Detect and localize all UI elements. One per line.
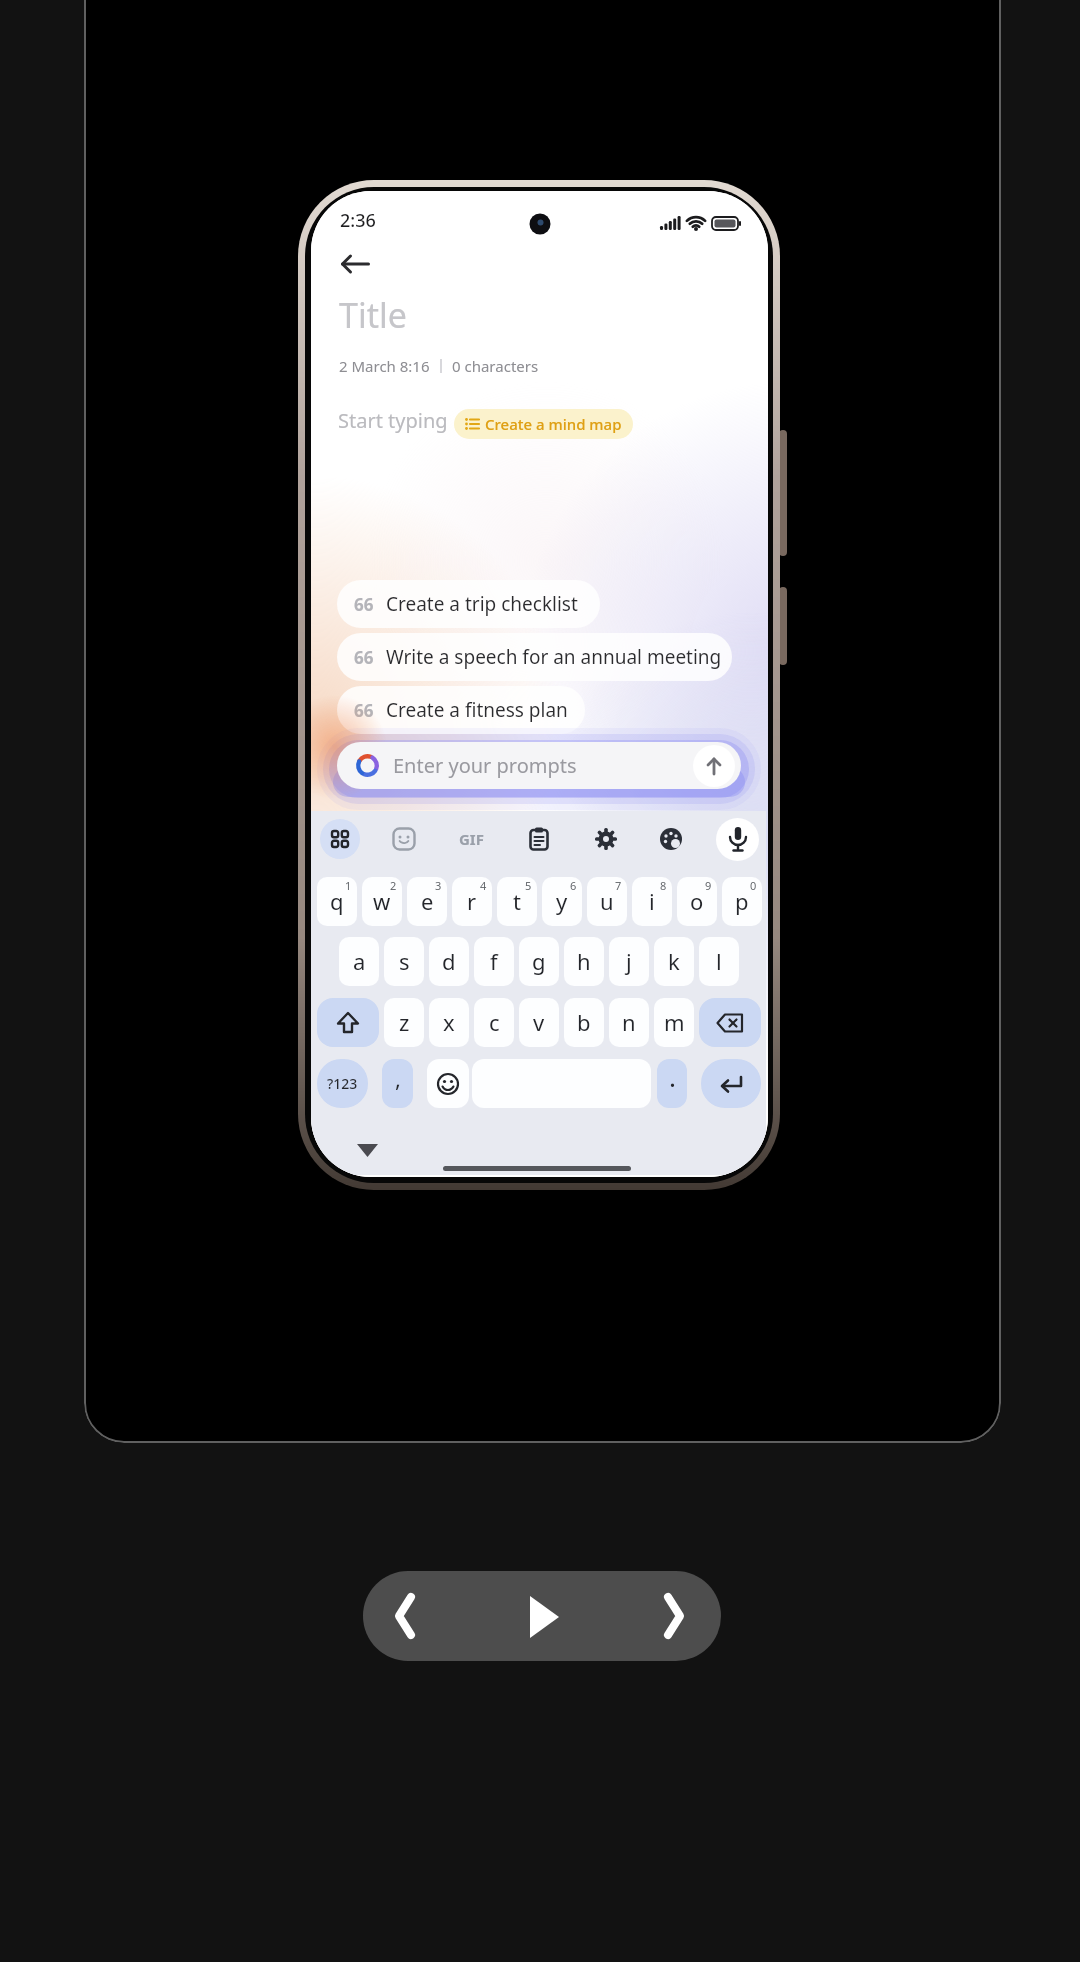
button[interactable]: 66 (337, 580, 600, 628)
button[interactable]: ?123 (317, 1059, 368, 1108)
button[interactable]: m (654, 998, 694, 1047)
button[interactable]: b (564, 998, 604, 1047)
staticText: 3 (435, 878, 442, 893)
button[interactable]: f (474, 937, 514, 986)
button[interactable]: i (632, 877, 672, 926)
staticText: 7 (615, 878, 622, 893)
button[interactable]: x (429, 998, 469, 1047)
button[interactable]: q (317, 877, 357, 926)
button[interactable]: n (609, 998, 649, 1047)
staticText: 1 (345, 878, 352, 893)
button[interactable]: h (564, 937, 604, 986)
staticText: 6 (570, 878, 577, 893)
staticText: p (735, 886, 749, 916)
button[interactable]: . (657, 1059, 687, 1108)
staticText: r (467, 886, 477, 916)
staticText: ?123 (327, 1074, 358, 1093)
button[interactable] (342, 255, 370, 273)
button[interactable] (654, 822, 688, 856)
button[interactable] (701, 1059, 761, 1108)
button[interactable] (716, 818, 759, 861)
button[interactable] (602, 1571, 721, 1661)
staticText: x (443, 1007, 455, 1037)
staticText: d (442, 946, 456, 976)
button[interactable]: 66 (337, 686, 585, 734)
staticText: 2:36 (340, 208, 376, 233)
button[interactable]: c (474, 998, 514, 1047)
staticText: v (533, 1007, 545, 1037)
button[interactable] (320, 819, 360, 859)
staticText: u (600, 886, 614, 916)
button[interactable] (693, 745, 735, 787)
button[interactable]: 66 (337, 633, 732, 681)
staticText: Create a fitness plan (386, 697, 568, 723)
staticText: b (577, 1007, 591, 1037)
button[interactable]: e (407, 877, 447, 926)
staticText: c (489, 1007, 500, 1037)
staticText: g (532, 946, 546, 976)
staticText: e (421, 886, 434, 916)
button[interactable]: t (497, 877, 537, 926)
staticText: Enter your prompts (393, 752, 577, 779)
button[interactable]: p (722, 877, 762, 926)
button[interactable]: j (609, 937, 649, 986)
button[interactable]: u (587, 877, 627, 926)
button[interactable]: Create a mind map (454, 409, 633, 439)
button[interactable]: GIF (449, 822, 493, 856)
button[interactable]: y (542, 877, 582, 926)
button[interactable] (427, 1059, 469, 1108)
button[interactable] (387, 822, 421, 856)
staticText: Start typing (338, 407, 448, 434)
button[interactable]: w (362, 877, 402, 926)
staticText: 5 (525, 878, 532, 893)
staticText: a (353, 946, 366, 976)
staticText: y (556, 886, 568, 916)
staticText: Create a mind map (485, 414, 622, 434)
button[interactable]: Enter your prompts (337, 742, 741, 789)
staticText: h (577, 946, 591, 976)
button[interactable] (483, 1571, 602, 1661)
button[interactable]: z (384, 998, 424, 1047)
button[interactable] (363, 1571, 483, 1661)
staticText: , (395, 1063, 401, 1093)
staticText: f (490, 946, 498, 976)
staticText: n (622, 1007, 636, 1037)
staticText: o (690, 886, 704, 916)
staticText: t (513, 886, 521, 916)
button[interactable]: a (339, 937, 379, 986)
staticText: q (330, 886, 344, 916)
button[interactable]: k (654, 937, 694, 986)
button[interactable]: , (382, 1059, 413, 1108)
button[interactable] (357, 1144, 379, 1158)
staticText: s (399, 946, 410, 976)
staticText: k (668, 946, 680, 976)
staticText: Title (339, 292, 407, 338)
staticText: z (399, 1007, 410, 1037)
button[interactable]: g (519, 937, 559, 986)
staticText: l (716, 946, 722, 976)
staticText: 9 (705, 878, 712, 893)
button[interactable]: r (452, 877, 492, 926)
staticText: . (669, 1059, 676, 1094)
button[interactable] (317, 998, 379, 1047)
button[interactable]: s (384, 937, 424, 986)
button[interactable]: d (429, 937, 469, 986)
button[interactable] (699, 998, 761, 1047)
button[interactable]: l (699, 937, 739, 986)
button[interactable] (589, 822, 623, 856)
staticText: 4 (480, 878, 487, 893)
staticText: 0 (750, 878, 757, 893)
staticText: 66 (354, 593, 374, 616)
button[interactable]: v (519, 998, 559, 1047)
staticText: i (649, 886, 655, 916)
button[interactable] (522, 822, 556, 856)
staticText: Write a speech for an annual meeting (386, 644, 722, 670)
staticText: 2 (390, 878, 397, 893)
staticText: j (626, 946, 632, 976)
staticText: 66 (354, 699, 374, 722)
staticText: GIF (459, 829, 484, 849)
staticText: 66 (354, 646, 374, 669)
staticText: 0 characters (452, 356, 539, 376)
button[interactable]: o (677, 877, 717, 926)
